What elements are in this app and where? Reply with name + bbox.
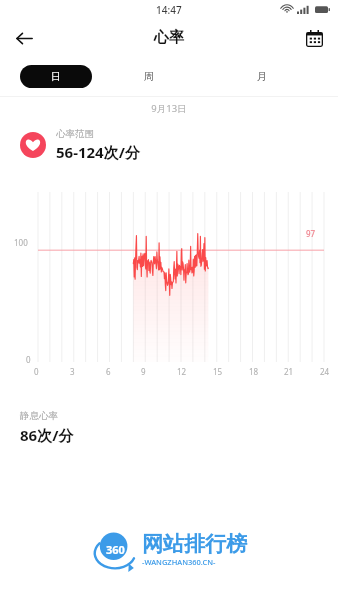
- staticText: 9: [141, 366, 146, 377]
- staticText: 周: [144, 70, 154, 83]
- button[interactable]: 月: [205, 65, 318, 88]
- staticText: 月: [257, 70, 267, 83]
- staticText: 心率: [154, 28, 184, 47]
- staticText: 6: [106, 366, 111, 377]
- staticText: 心率范围: [56, 128, 94, 140]
- button[interactable]: 周: [92, 65, 205, 88]
- button[interactable]: Back: [8, 22, 40, 54]
- staticText: 56-124次/分: [56, 142, 140, 162]
- staticText: 3: [70, 366, 75, 377]
- staticText: 0: [34, 366, 39, 377]
- staticText: 静息心率: [20, 410, 58, 422]
- staticText: 12: [177, 366, 187, 377]
- staticText: 21: [284, 366, 294, 377]
- staticText: -WANGZHAN360.CN-: [142, 557, 216, 567]
- staticText: 100: [14, 237, 28, 248]
- staticText: 24: [320, 366, 330, 377]
- staticText: 360: [106, 542, 125, 557]
- staticText: 18: [249, 366, 259, 377]
- staticText: 97: [306, 228, 316, 239]
- staticText: 9月13日: [0, 102, 338, 115]
- button[interactable]: Calendar: [298, 22, 330, 54]
- staticText: 网站排行榜: [142, 531, 247, 557]
- staticText: 86次/分: [20, 425, 74, 445]
- staticText: 0: [26, 354, 31, 365]
- button[interactable]: 日: [20, 65, 92, 88]
- staticText: 日: [51, 70, 61, 83]
- staticText: 15: [213, 366, 223, 377]
- staticText: 14:47: [156, 3, 182, 17]
